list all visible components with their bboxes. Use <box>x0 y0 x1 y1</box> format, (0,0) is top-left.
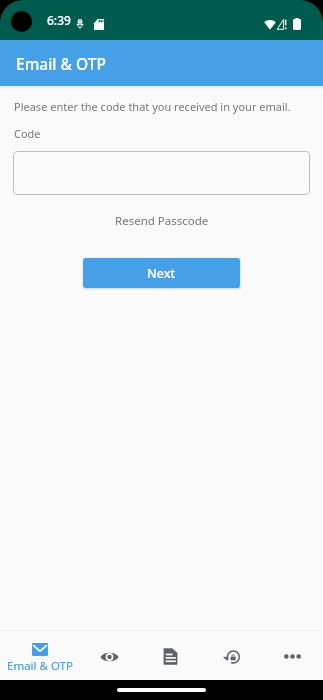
button[interactable]: Documents <box>140 631 201 680</box>
button[interactable]: Restore password <box>201 631 262 680</box>
button[interactable]: Resend Passcode <box>111 209 213 233</box>
button[interactable]: Email & OTP <box>0 631 79 680</box>
button[interactable]: More options <box>262 631 323 680</box>
staticText: Next <box>147 265 176 282</box>
staticText: Email & OTP <box>16 53 106 74</box>
staticText: Email & OTP <box>7 658 73 674</box>
button[interactable]: Next <box>83 258 240 288</box>
staticText: Please enter the code that you received … <box>14 99 291 114</box>
staticText: Code <box>14 126 41 141</box>
button[interactable]: Visibility <box>79 631 140 680</box>
staticText: 6:39 <box>47 12 71 28</box>
button[interactable] <box>13 151 310 195</box>
